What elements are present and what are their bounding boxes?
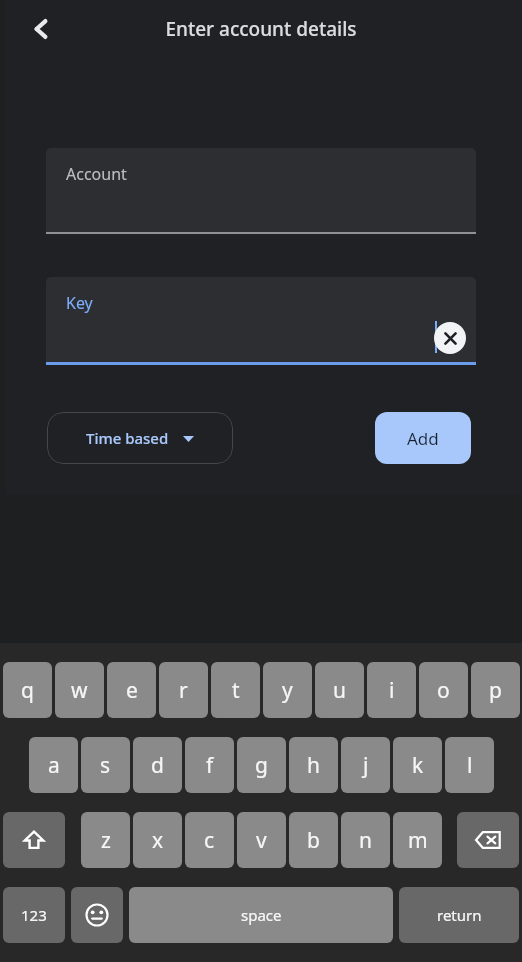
button[interactable]: c [185, 812, 234, 868]
staticText: m [408, 826, 428, 855]
staticText: return [437, 905, 482, 925]
staticText: Key [66, 292, 93, 314]
button[interactable]: g [237, 737, 286, 793]
button[interactable]: Add [375, 412, 471, 464]
button[interactable]: y [263, 662, 312, 718]
staticText: x [152, 826, 164, 855]
button[interactable]: i [367, 662, 416, 718]
button[interactable]: k [393, 737, 442, 793]
button[interactable]: Backspace [457, 812, 519, 868]
staticText: s [100, 751, 111, 780]
button[interactable]: v [237, 812, 286, 868]
button[interactable]: m [393, 812, 442, 868]
staticText: h [307, 751, 320, 780]
staticText: Account [66, 163, 127, 185]
staticText: 123 [21, 905, 47, 925]
staticText: q [21, 676, 34, 705]
button[interactable]: e [107, 662, 156, 718]
staticText: g [255, 751, 268, 780]
button[interactable]: a [29, 737, 78, 793]
button[interactable]: Clear key [434, 322, 466, 354]
staticText: o [437, 676, 450, 705]
button[interactable]: Emoji [71, 887, 123, 943]
button[interactable]: j [341, 737, 390, 793]
button[interactable]: d [133, 737, 182, 793]
button[interactable]: 123 [3, 887, 65, 943]
staticText: p [489, 676, 502, 705]
staticText: y [282, 676, 293, 705]
staticText: e [126, 676, 138, 705]
button[interactable]: Time based [47, 412, 233, 464]
button[interactable]: space [129, 887, 393, 943]
staticText: w [71, 676, 88, 705]
staticText: f [206, 751, 214, 780]
staticText: u [333, 676, 346, 705]
button[interactable]: r [159, 662, 208, 718]
staticText: b [307, 826, 320, 855]
button[interactable]: l [445, 737, 494, 793]
staticText: Add [407, 427, 439, 450]
button[interactable]: t [211, 662, 260, 718]
button[interactable]: Shift [3, 812, 65, 868]
staticText: j [363, 751, 369, 780]
button[interactable]: f [185, 737, 234, 793]
staticText: space [241, 905, 282, 925]
staticText: z [101, 826, 111, 855]
staticText: r [179, 676, 188, 705]
button[interactable]: x [133, 812, 182, 868]
staticText: i [389, 676, 395, 705]
staticText: v [256, 826, 267, 855]
button[interactable]: Account [46, 148, 476, 233]
button[interactable]: b [289, 812, 338, 868]
button[interactable]: u [315, 662, 364, 718]
button[interactable]: s [81, 737, 130, 793]
button[interactable]: q [3, 662, 52, 718]
button[interactable]: z [81, 812, 130, 868]
button[interactable]: w [55, 662, 104, 718]
button[interactable]: p [471, 662, 520, 718]
button[interactable]: Key [46, 277, 476, 362]
button[interactable]: h [289, 737, 338, 793]
staticText: n [359, 826, 372, 855]
staticText: Time based [86, 428, 169, 448]
staticText: a [48, 751, 60, 780]
staticText: Enter account details [0, 16, 522, 42]
staticText: t [232, 676, 240, 705]
staticText: d [151, 751, 164, 780]
staticText: k [412, 751, 424, 780]
button[interactable]: n [341, 812, 390, 868]
staticText: c [204, 826, 215, 855]
button[interactable]: Back [18, 6, 64, 52]
button[interactable]: o [419, 662, 468, 718]
button[interactable]: return [399, 887, 519, 943]
staticText: l [467, 751, 473, 780]
